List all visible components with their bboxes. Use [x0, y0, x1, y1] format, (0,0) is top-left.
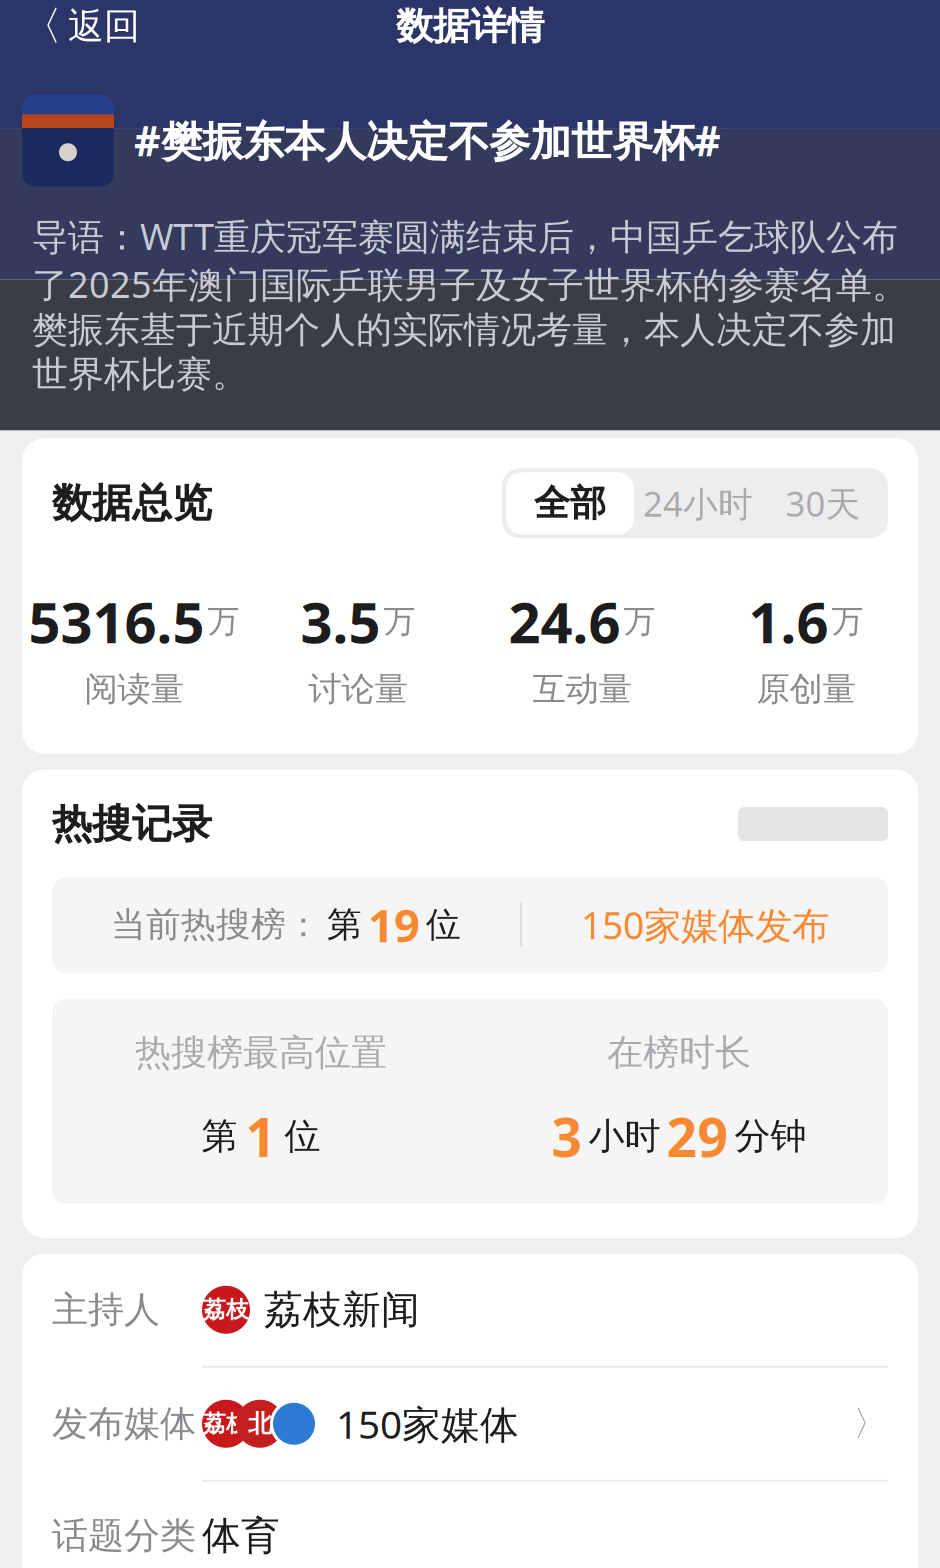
- staticText: 荔枝: [203, 1296, 249, 1324]
- staticText: 150家媒体发布: [581, 900, 829, 949]
- button[interactable]: 〈: [0, 0, 162, 61]
- staticText: 原创量: [756, 669, 855, 709]
- staticText: 30天: [785, 480, 860, 526]
- staticText: 热搜榜最高位置: [135, 1031, 387, 1075]
- staticText: 荔枝: [203, 1410, 249, 1438]
- staticText: 19: [368, 895, 420, 955]
- staticText: 第: [327, 903, 362, 946]
- staticText: 返回: [68, 4, 140, 48]
- staticText: 发布媒体: [52, 1402, 196, 1446]
- staticText: 阅读量: [84, 669, 183, 709]
- button[interactable]: 24小时: [634, 472, 762, 534]
- staticText: 1: [245, 1101, 276, 1172]
- staticText: 互动量: [532, 669, 631, 709]
- staticText: 第: [201, 1114, 237, 1158]
- button[interactable]: 发布媒体: [22, 1368, 918, 1480]
- staticText: 万: [623, 602, 655, 641]
- staticText: #樊振东本人决定不参加世界杯#: [134, 113, 721, 168]
- staticText: 〈: [22, 2, 62, 51]
- staticText: 150家媒体: [336, 1398, 519, 1449]
- staticText: 导语：WTT重庆冠军赛圆满结束后，中国乒乞球队公布了2025年澳门国际乒联男子及…: [32, 212, 908, 396]
- staticText: 当前热搜榜：: [111, 903, 321, 946]
- staticText: 主持人: [52, 1288, 160, 1332]
- staticText: 万: [207, 602, 239, 641]
- staticText: 5316.5: [28, 584, 204, 659]
- staticText: 位: [426, 903, 461, 946]
- staticText: 万: [383, 602, 415, 641]
- staticText: 北: [248, 1409, 272, 1438]
- staticText: 〉: [853, 1402, 888, 1445]
- staticText: 3: [551, 1101, 582, 1172]
- button[interactable]: 30天: [762, 472, 884, 534]
- staticText: 数据详情: [396, 3, 544, 49]
- button[interactable]: 全部: [506, 472, 634, 534]
- staticText: 29: [666, 1101, 728, 1172]
- staticText: 在榜时长: [607, 1031, 751, 1075]
- staticText: 讨论量: [308, 669, 407, 709]
- staticText: 24小时: [643, 480, 753, 526]
- staticText: 热搜记录: [52, 800, 212, 849]
- staticText: 位: [284, 1114, 320, 1158]
- staticText: 小时: [588, 1114, 660, 1158]
- staticText: 体育: [202, 1512, 280, 1559]
- staticText: 分钟: [734, 1114, 806, 1158]
- staticText: 24.6: [508, 584, 620, 659]
- staticText: 万: [831, 602, 863, 641]
- staticText: 3.5: [300, 584, 380, 659]
- staticText: 全部: [534, 481, 606, 525]
- staticText: 数据总览: [52, 479, 212, 528]
- staticText: 1.6: [748, 584, 828, 659]
- staticText: 荔枝新闻: [264, 1286, 420, 1333]
- staticText: 话题分类: [52, 1514, 196, 1558]
